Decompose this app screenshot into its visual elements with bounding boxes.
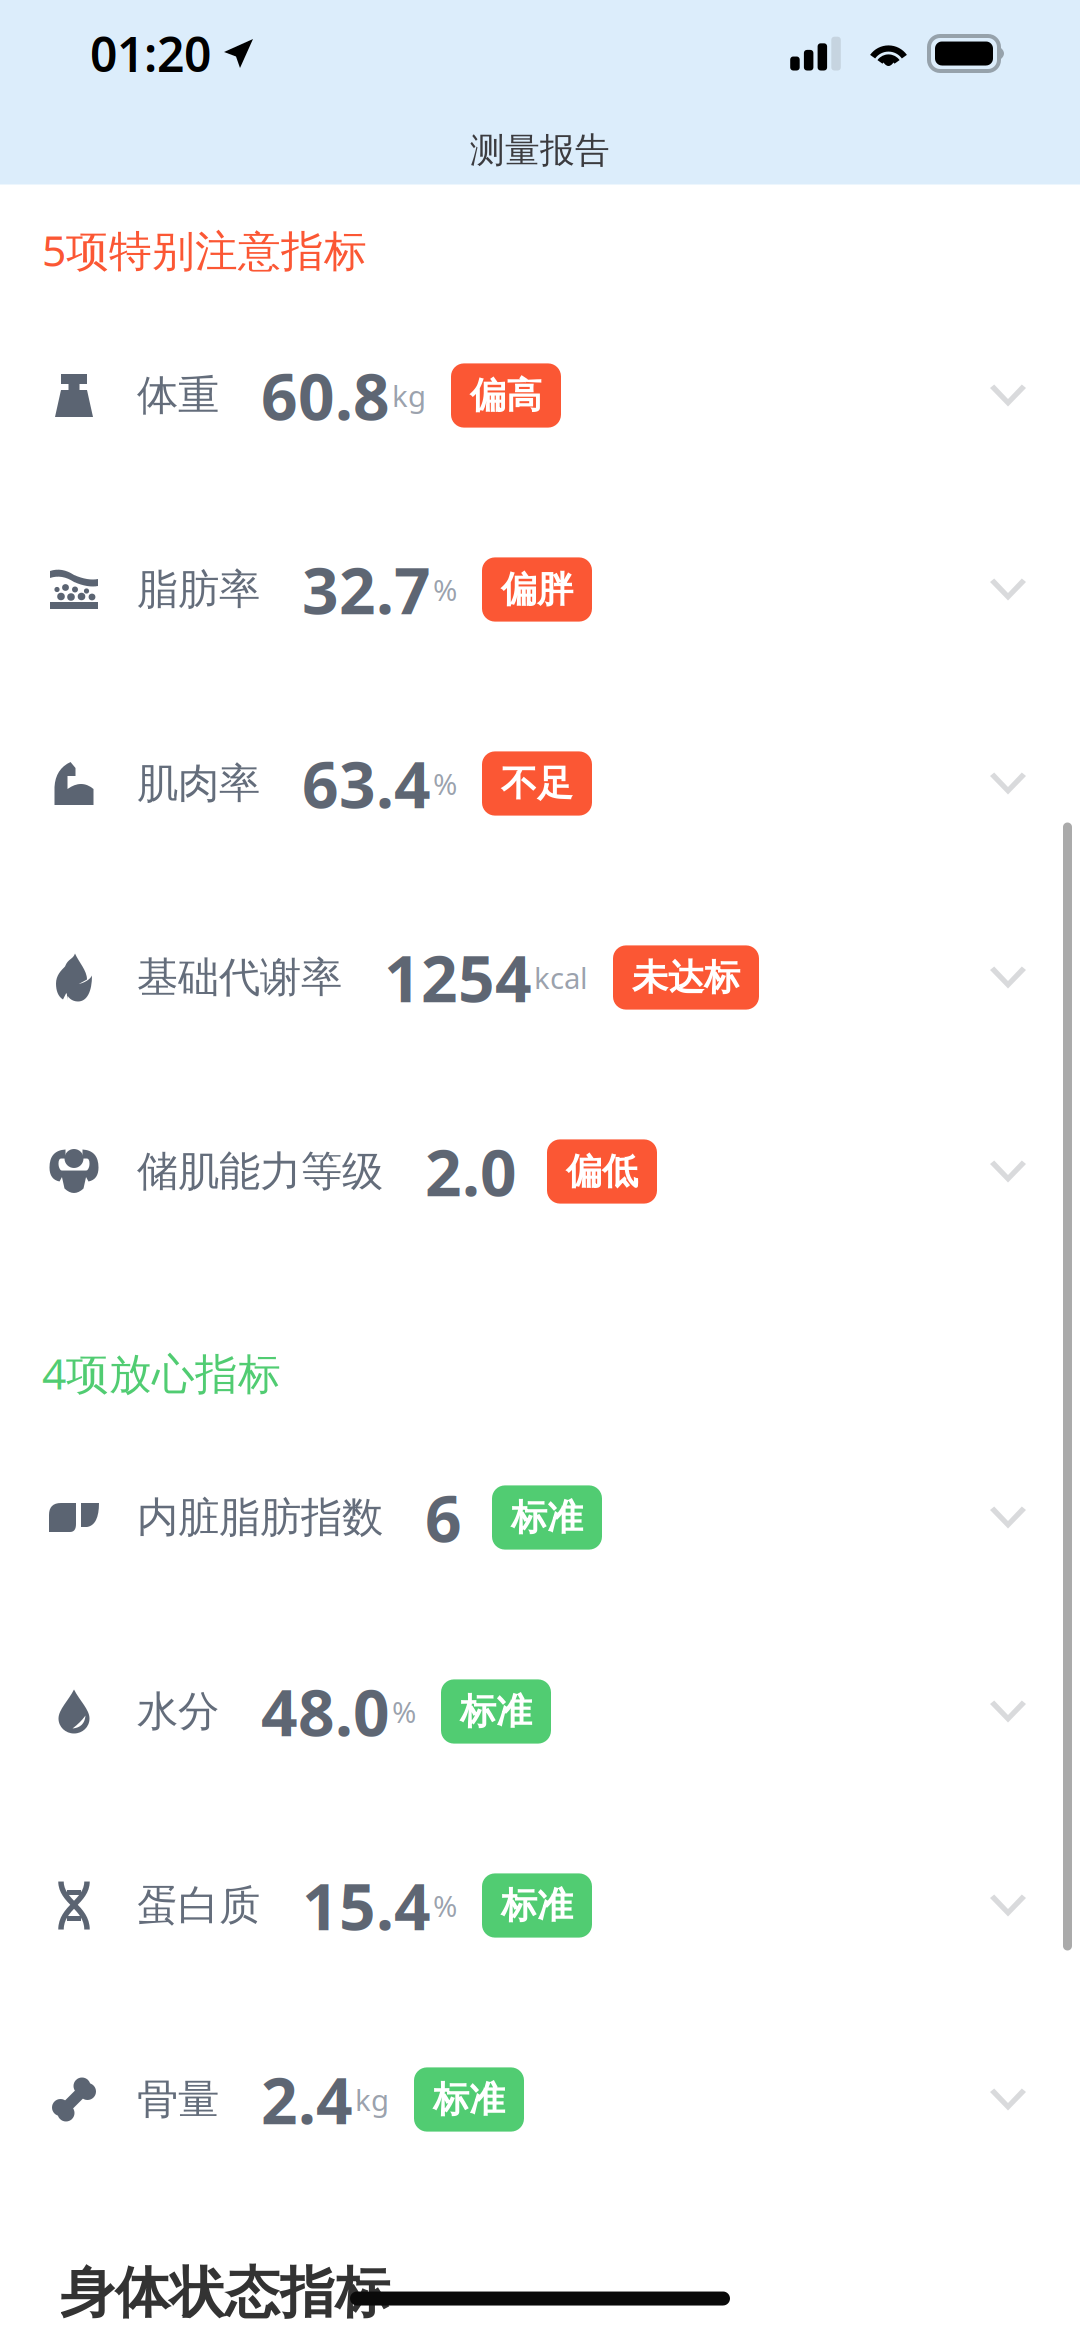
staticText: kcal (534, 958, 588, 997)
button[interactable]: 肌肉率 (0, 686, 1080, 880)
staticText: % (392, 1692, 416, 1731)
button[interactable]: 蛋白质 (0, 1808, 1080, 2002)
staticText: 体重 (137, 370, 219, 421)
staticText: 32.7 (302, 547, 431, 632)
staticText: % (433, 1886, 457, 1925)
staticText: % (433, 764, 457, 803)
staticText: 储肌能力等级 (137, 1146, 383, 1197)
staticText: 4项放心指标 (42, 1344, 281, 1401)
staticText: % (433, 570, 457, 609)
staticText: 标准 (501, 1883, 573, 1928)
staticText: 60.8 (261, 353, 390, 438)
button[interactable]: 内脏脂肪指数 (0, 1420, 1080, 1614)
button[interactable]: 水分 (0, 1614, 1080, 1808)
staticText: 偏胖 (501, 567, 573, 612)
staticText: 15.4 (302, 1863, 431, 1948)
staticText: kg (355, 2080, 389, 2119)
button[interactable]: 储肌能力等级 (0, 1074, 1080, 1268)
staticText: 基础代谢率 (137, 952, 342, 1003)
staticText: 63.4 (302, 741, 431, 826)
staticText: 蛋白质 (137, 1880, 260, 1931)
button[interactable]: 骨量 (0, 2002, 1080, 2196)
staticText: 1254 (384, 935, 532, 1020)
staticText: 标准 (511, 1495, 583, 1540)
button[interactable]: 基础代谢率 (0, 880, 1080, 1074)
staticText: 2.4 (261, 2057, 353, 2142)
staticText: 5项特别注意指标 (42, 221, 367, 278)
staticText: 01:20 (90, 22, 211, 85)
staticText: 身体状态指标 (60, 2259, 390, 2327)
button[interactable]: 脂肪率 (0, 492, 1080, 686)
staticText: 标准 (433, 2077, 505, 2122)
staticText: 6 (425, 1475, 462, 1560)
staticText: 内脏脂肪指数 (137, 1492, 383, 1543)
staticText: 肌肉率 (137, 758, 260, 809)
staticText: 脂肪率 (137, 564, 260, 615)
staticText: 水分 (137, 1686, 219, 1737)
staticText: 48.0 (261, 1669, 390, 1754)
button[interactable]: 体重 (0, 298, 1080, 492)
staticText: 2.0 (425, 1129, 517, 1214)
staticText: 未达标 (632, 955, 740, 1000)
staticText: kg (392, 376, 426, 415)
staticText: 骨量 (137, 2074, 219, 2125)
staticText: 偏低 (566, 1149, 638, 1194)
staticText: 标准 (460, 1689, 532, 1734)
staticText: 偏高 (470, 373, 542, 418)
staticText: 不足 (501, 761, 573, 806)
staticText: 测量报告 (470, 129, 610, 172)
